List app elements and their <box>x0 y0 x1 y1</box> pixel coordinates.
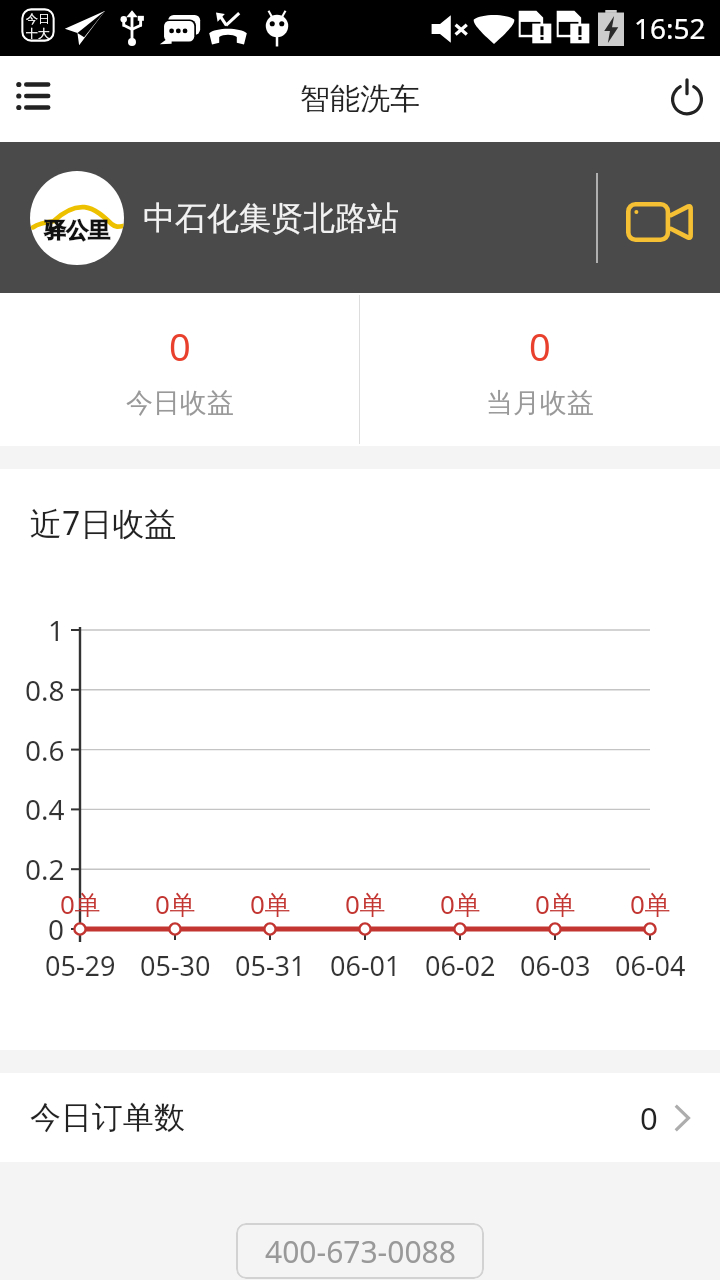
staticText: 0 <box>640 1097 658 1139</box>
staticText: 06-04 <box>615 947 686 984</box>
staticText: 400-673-0088 <box>265 1231 456 1272</box>
staticText: 十大 <box>26 26 50 39</box>
staticText: 0单 <box>60 886 101 922</box>
button[interactable]: 400-673-0088 <box>236 1223 484 1279</box>
staticText: 当月收益 <box>486 386 594 420</box>
staticText: 0.8 <box>25 671 65 709</box>
staticText: 0单 <box>250 886 291 922</box>
button[interactable]: Power <box>656 68 718 130</box>
staticText: 0.4 <box>25 790 65 828</box>
staticText: 驿公里 <box>44 217 110 245</box>
button[interactable]: 今日订单数 <box>0 1073 720 1162</box>
staticText: 0 <box>169 320 191 372</box>
button[interactable]: Menu <box>2 68 64 130</box>
staticText: 0.2 <box>25 850 65 888</box>
staticText: 1 <box>48 611 65 649</box>
staticText: 06-03 <box>520 947 591 984</box>
staticText: 0 <box>529 320 551 372</box>
staticText: 06-02 <box>425 947 496 984</box>
staticText: 近7日收益 <box>30 501 177 545</box>
staticText: 今日 <box>26 11 50 26</box>
staticText: 智能洗车 <box>300 80 420 118</box>
staticText: 今日收益 <box>126 386 234 420</box>
staticText: 05-29 <box>45 947 116 984</box>
button[interactable]: Video monitor <box>598 142 720 293</box>
staticText: 0单 <box>630 886 671 922</box>
staticText: 0单 <box>345 886 386 922</box>
staticText: 0单 <box>155 886 196 922</box>
button[interactable]: 0 <box>0 293 359 446</box>
button[interactable]: 0 <box>360 293 720 446</box>
staticText: 0 <box>48 910 65 948</box>
staticText: 0单 <box>440 886 481 922</box>
staticText: 16:52 <box>634 9 706 47</box>
staticText: 中石化集贤北路站 <box>143 198 399 238</box>
staticText: 今日订单数 <box>30 1098 185 1137</box>
staticText: 0.6 <box>25 731 65 769</box>
staticText: 05-30 <box>140 947 211 984</box>
staticText: 0单 <box>535 886 576 922</box>
staticText: 05-31 <box>235 947 306 984</box>
staticText: 06-01 <box>330 947 401 984</box>
